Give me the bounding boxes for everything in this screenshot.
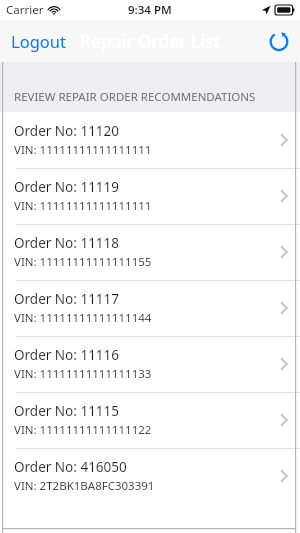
button[interactable]: Order No: 11117: [0, 280, 300, 336]
button[interactable]: Order No: 11115: [0, 392, 300, 448]
staticText: Order No: 11117: [14, 290, 120, 308]
staticText: Order No: 416050: [14, 458, 127, 476]
staticText: 9:34 PM: [128, 2, 172, 18]
staticText: Order No: 11115: [14, 402, 120, 420]
staticText: VIN: 11111111111111155: [14, 254, 152, 270]
staticText: Order No: 11118: [14, 234, 120, 252]
button[interactable]: Order No: 11119: [0, 168, 300, 224]
staticText: VIN: 11111111111111133: [14, 366, 152, 382]
button[interactable]: Refresh: [258, 20, 300, 62]
staticText: VIN: 2T2BK1BA8FC303391: [14, 478, 155, 494]
staticText: REVIEW REPAIR ORDER RECOMMENDATIONS: [14, 89, 256, 105]
staticText: Carrier: [6, 2, 44, 18]
button[interactable]: Order No: 416050: [0, 448, 300, 504]
staticText: VIN: 11111111111111144: [14, 310, 152, 326]
staticText: VIN: 11111111111111111: [14, 198, 152, 214]
staticText: Repair Order List: [80, 30, 221, 53]
staticText: VIN: 11111111111111122: [14, 422, 152, 438]
button[interactable]: Logout: [0, 20, 77, 62]
staticText: VIN: 11111111111111111: [14, 142, 152, 158]
staticText: Order No: 11116: [14, 346, 120, 364]
button[interactable]: Order No: 11116: [0, 336, 300, 392]
staticText: Order No: 11120: [14, 122, 120, 140]
button[interactable]: Order No: 11118: [0, 224, 300, 280]
staticText: Order No: 11119: [14, 178, 120, 196]
button[interactable]: Order No: 11120: [0, 112, 300, 168]
staticText: Logout: [11, 30, 66, 52]
